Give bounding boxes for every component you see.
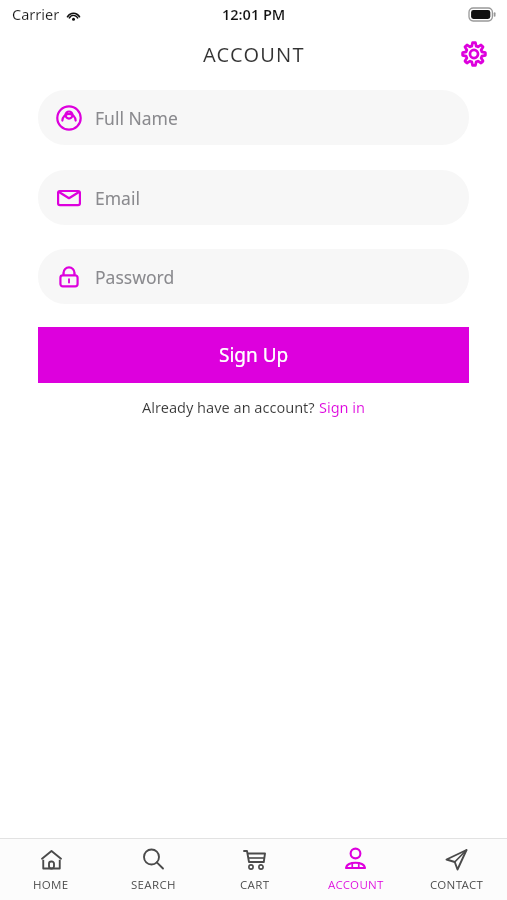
- staticText: Already have an account?: [142, 397, 319, 417]
- staticText: CONTACT: [430, 877, 484, 893]
- staticText: Sign in: [319, 397, 366, 417]
- button[interactable]: Settings: [455, 35, 493, 73]
- button[interactable]: Password: [38, 249, 469, 304]
- button[interactable]: HOME: [0, 841, 102, 899]
- staticText: Email: [95, 186, 140, 210]
- button[interactable]: Sign in: [319, 397, 366, 417]
- button[interactable]: CONTACT: [406, 841, 507, 899]
- staticText: CART: [240, 877, 270, 893]
- staticText: Carrier: [12, 4, 60, 24]
- button[interactable]: Full Name: [38, 90, 469, 145]
- staticText: Sign Up: [219, 342, 289, 368]
- button[interactable]: ACCOUNT: [305, 841, 406, 899]
- button[interactable]: SEARCH: [102, 841, 204, 899]
- staticText: HOME: [33, 877, 69, 893]
- button[interactable]: Sign Up: [38, 327, 469, 383]
- staticText: Full Name: [95, 106, 178, 130]
- staticText: Password: [95, 265, 175, 289]
- staticText: 12:01 PM: [222, 4, 286, 24]
- button[interactable]: Email: [38, 170, 469, 225]
- staticText: ACCOUNT: [203, 41, 305, 68]
- button[interactable]: CART: [204, 841, 305, 899]
- staticText: ACCOUNT: [328, 877, 384, 893]
- staticText: SEARCH: [131, 877, 176, 893]
